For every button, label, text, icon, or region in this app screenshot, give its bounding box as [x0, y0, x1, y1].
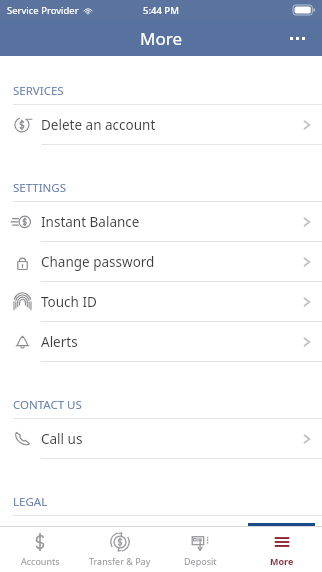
- button[interactable]: Alerts: [0, 322, 322, 361]
- staticText: Alerts: [41, 333, 78, 351]
- staticText: 5:44 PM: [143, 4, 179, 17]
- staticText: CONTACT US: [13, 397, 82, 413]
- staticText: SETTINGS: [13, 180, 67, 196]
- button[interactable]: Change password: [0, 242, 322, 281]
- staticText: Transfer & Pay: [89, 555, 151, 567]
- button[interactable]: Touch ID: [0, 282, 322, 321]
- button[interactable]: Call us: [0, 419, 322, 458]
- button[interactable]: Accounts: [0, 527, 80, 572]
- button[interactable]: Deposit: [160, 527, 241, 572]
- staticText: SERVICES: [13, 83, 64, 99]
- button[interactable]: More options: [280, 23, 314, 53]
- staticText: Call us: [41, 430, 83, 448]
- button[interactable]: Transfer & Pay: [80, 527, 160, 572]
- staticText: More: [270, 555, 294, 567]
- staticText: Touch ID: [41, 293, 97, 311]
- staticText: LEGAL: [13, 494, 48, 510]
- staticText: Deposit: [184, 555, 217, 567]
- button[interactable]: Delete an account: [0, 105, 322, 144]
- button[interactable]: Instant Balance: [0, 202, 322, 241]
- staticText: Delete an account: [41, 116, 156, 134]
- staticText: Change password: [41, 253, 155, 271]
- staticText: Service Provider: [7, 4, 79, 17]
- staticText: Accounts: [21, 555, 60, 567]
- staticText: More: [140, 27, 182, 50]
- button[interactable]: More: [241, 527, 322, 572]
- staticText: Instant Balance: [41, 213, 140, 231]
